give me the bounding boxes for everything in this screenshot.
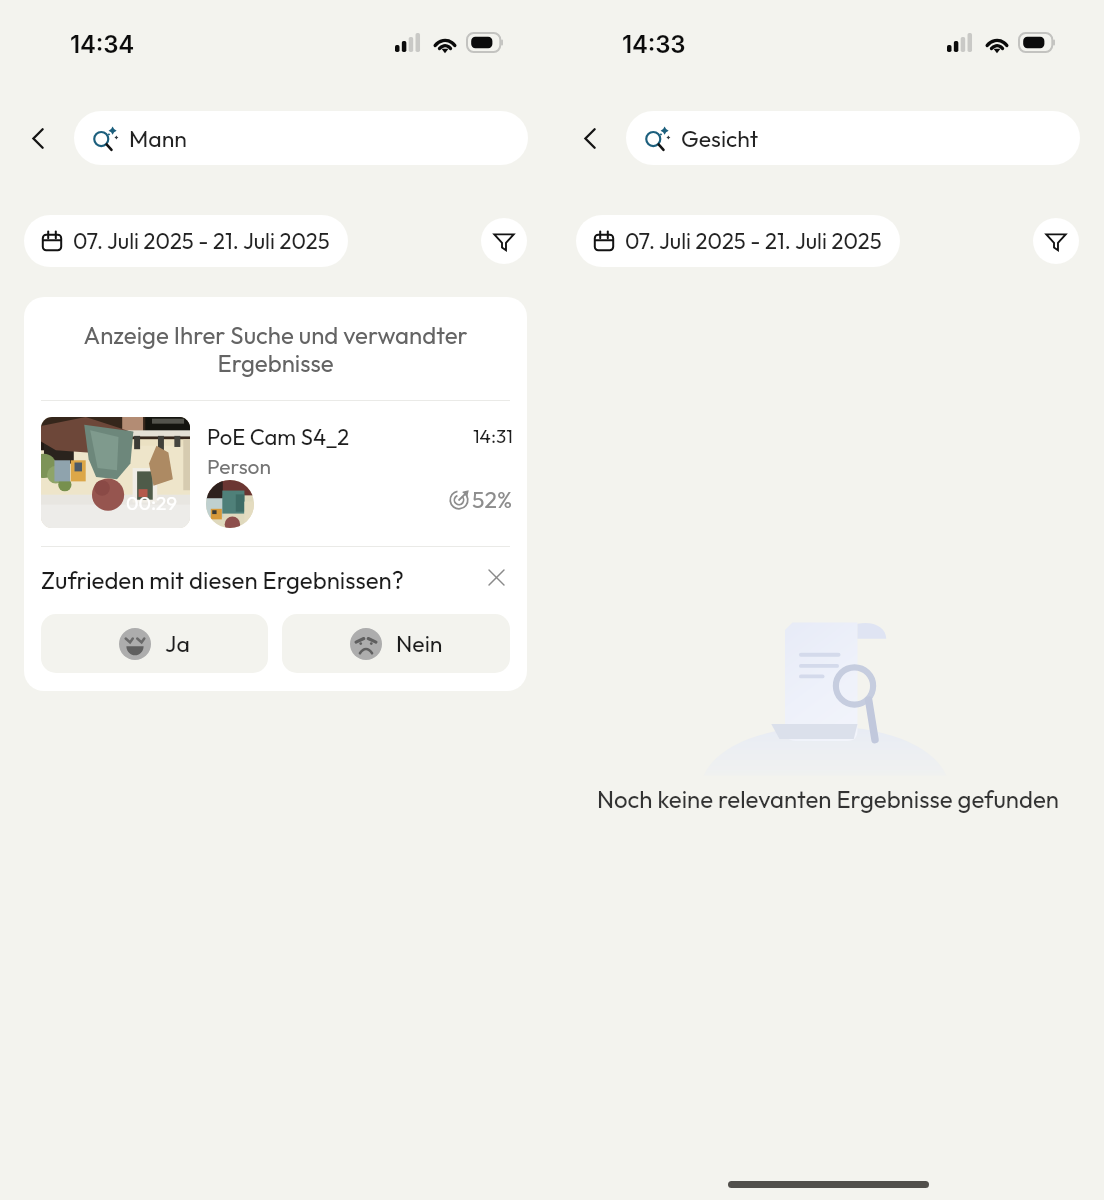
button[interactable]: Back — [568, 116, 612, 160]
staticText: Noch keine relevanten Ergebnisse gefunde… — [597, 784, 1059, 814]
staticText: 14:33 — [622, 30, 686, 59]
button[interactable]: Close — [478, 559, 514, 595]
button[interactable]: 07. Juli 2025 - 21. Juli 2025 — [24, 215, 348, 267]
staticText: Gesicht — [681, 124, 759, 153]
staticText: PoE Cam S4_2 — [207, 423, 350, 451]
staticText: Ja — [165, 629, 190, 658]
button[interactable]: Ja — [41, 614, 268, 673]
button[interactable]: Gesicht — [626, 111, 1080, 165]
button[interactable]: Nein — [282, 614, 510, 673]
staticText: Anzeige Ihrer Suche und verwandter Ergeb… — [54, 320, 497, 378]
staticText: Person — [207, 453, 271, 479]
staticText: Zufrieden mit diesen Ergebnissen? — [41, 565, 404, 595]
button[interactable]: 07. Juli 2025 - 21. Juli 2025 — [576, 215, 900, 267]
staticText: 52% — [472, 485, 513, 514]
button[interactable]: Filter — [481, 218, 527, 264]
staticText: Nein — [396, 629, 443, 658]
staticText: 14:34 — [70, 30, 135, 59]
staticText: 07. Juli 2025 - 21. Juli 2025 — [73, 227, 330, 255]
staticText: 00:29 — [126, 491, 178, 515]
button[interactable]: Filter — [1033, 218, 1079, 264]
staticText: 07. Juli 2025 - 21. Juli 2025 — [625, 227, 882, 255]
button[interactable]: Back — [16, 116, 60, 160]
staticText: 14:31 — [473, 424, 513, 448]
button[interactable]: Mann — [74, 111, 528, 165]
staticText: Mann — [129, 124, 187, 153]
